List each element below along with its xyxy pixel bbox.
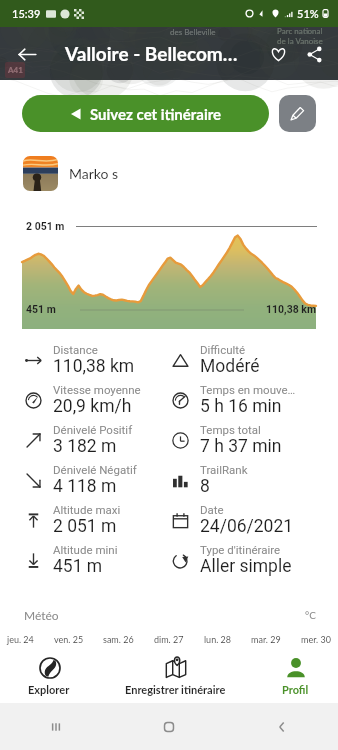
staticText: ven. 25 [54, 634, 84, 645]
staticText: Temps en mouve… [200, 383, 296, 396]
staticText: 110,38 km [53, 356, 135, 377]
staticText: 7 h 37 min [200, 436, 282, 457]
staticText: Dénivelé Positif [53, 423, 133, 436]
button[interactable]: Profil [252, 648, 338, 703]
staticText: des Belleville [170, 27, 216, 37]
staticText: Valloire - Bellecom… [65, 42, 238, 65]
staticText: Difficulté [200, 343, 246, 356]
staticText: lun. 28 [204, 634, 232, 645]
staticText: jeu. 24 [7, 634, 34, 645]
button[interactable]: Home [112, 703, 225, 750]
staticText: 2 051 m [53, 516, 117, 537]
staticText: Profil [282, 683, 309, 696]
staticText: Date [200, 503, 224, 516]
staticText: 20,9 km/h [53, 396, 132, 417]
button[interactable]: Explorer [0, 648, 98, 703]
staticText: dim. 27 [154, 634, 184, 645]
staticText: Météo [24, 608, 59, 622]
staticText: 51% [297, 7, 319, 20]
staticText: Dénivelé Négatif [53, 463, 137, 476]
staticText: Enregistrer itinéraire [125, 683, 226, 696]
staticText: TrailRank [200, 463, 248, 476]
staticText: Temps total [200, 423, 261, 436]
button[interactable]: Share [299, 39, 329, 69]
staticText: Marko s [69, 165, 119, 182]
staticText: Vitesse moyenne [53, 383, 141, 396]
staticText: Explorer [28, 683, 70, 696]
staticText: 3 182 m [53, 436, 117, 457]
staticText: 8 [200, 476, 210, 497]
staticText: mer. 30 [301, 634, 331, 645]
button[interactable]: Edit [279, 95, 316, 132]
button[interactable]: Marko s [23, 156, 338, 191]
staticText: Suivez cet itinéraire [90, 105, 222, 123]
button[interactable]: Recents [0, 703, 112, 750]
staticText: mar. 29 [251, 634, 281, 645]
staticText: Distance [53, 343, 98, 356]
staticText: 24/06/2021 [200, 516, 294, 537]
button[interactable]: Back [9, 36, 45, 72]
staticText: °C [305, 609, 316, 621]
staticText: 110,38 km [266, 303, 317, 315]
staticText: sam. 26 [103, 634, 134, 645]
staticText: Altitude maxi [53, 503, 121, 516]
staticText: 2 051 m [26, 220, 65, 232]
staticText: Altitude mini [53, 543, 118, 556]
staticText: 451 m [26, 303, 56, 315]
staticText: Parc national de la Vanoise [277, 26, 323, 46]
staticText: Type d'itinéraire [200, 543, 281, 556]
button[interactable]: Enregistrer itinéraire [98, 648, 252, 703]
button[interactable]: Favorite [263, 39, 293, 69]
button[interactable]: Back [225, 703, 338, 750]
staticText: 451 m [53, 556, 103, 577]
staticText: Modéré [200, 356, 260, 377]
button[interactable]: Suivez cet itinéraire [22, 95, 269, 132]
staticText: 5 h 16 min [200, 396, 282, 417]
staticText: Aller simple [200, 556, 292, 577]
staticText: 15:39 [12, 7, 41, 20]
staticText: 4 118 m [53, 476, 117, 497]
staticText: A41 [8, 65, 23, 75]
